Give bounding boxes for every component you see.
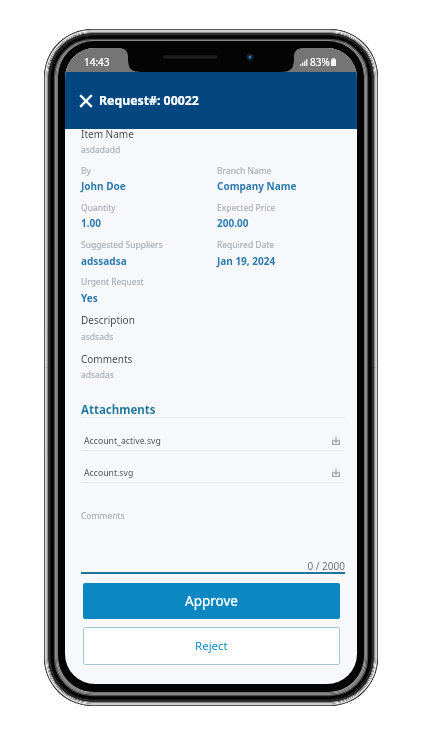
other: Download: [332, 469, 340, 477]
staticText: Quantity: [81, 202, 116, 214]
staticText: Company Name: [217, 179, 297, 193]
staticText: 1.00: [81, 216, 101, 230]
staticText: adsadas: [81, 369, 114, 381]
staticText: Request#: 00022: [99, 92, 199, 109]
staticText: Suggested Suppliers: [81, 239, 163, 251]
staticText: Expected Price: [217, 202, 276, 214]
staticText: Account_active.svg: [84, 435, 161, 447]
staticText: asdsads: [81, 331, 114, 343]
button[interactable]: Account_active.svg: [81, 430, 345, 452]
staticText: 83%: [310, 55, 330, 69]
button[interactable]: Reject: [83, 627, 340, 665]
staticText: Account.svg: [84, 467, 134, 479]
staticText: asdadadd: [81, 144, 121, 156]
staticText: 14:43: [84, 55, 110, 69]
button[interactable]: Close: [72, 87, 100, 115]
staticText: Branch Name: [217, 165, 272, 177]
staticText: By: [81, 165, 91, 177]
staticText: adssadsa: [81, 254, 127, 268]
staticText: Urgent Request: [81, 276, 144, 288]
staticText: 0 / 2000: [81, 559, 345, 573]
staticText: Item Name: [81, 127, 134, 141]
staticText: Required Date: [217, 239, 275, 251]
staticText: Attachments: [81, 402, 156, 418]
staticText: Comments: [81, 510, 125, 522]
other: Download: [332, 437, 340, 445]
staticText: Approve: [185, 592, 238, 610]
staticText: Jan 19, 2024: [217, 254, 276, 268]
staticText: John Doe: [81, 179, 126, 193]
button[interactable]: Account.svg: [81, 462, 345, 484]
staticText: 200.00: [217, 216, 249, 230]
staticText: Reject: [195, 638, 228, 654]
staticText: Comments: [81, 352, 133, 366]
staticText: Yes: [81, 291, 98, 305]
button[interactable]: Approve: [83, 583, 340, 619]
staticText: Description: [81, 313, 135, 327]
